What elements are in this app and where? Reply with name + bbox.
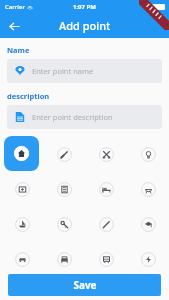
staticText: description (7, 91, 50, 101)
staticText: Enter point name (32, 66, 94, 76)
button[interactable]: bulb (133, 139, 163, 169)
staticText: 1:07 PM (73, 3, 96, 11)
button[interactable]: knife (49, 139, 79, 169)
button[interactable]: boat (7, 209, 37, 239)
button[interactable]: sofa (49, 244, 79, 274)
button[interactable]: hat (133, 209, 163, 239)
button[interactable]: bolt (133, 244, 163, 274)
button[interactable]: car (7, 244, 37, 274)
button[interactable]: bbq (133, 174, 163, 204)
button[interactable]: building (49, 174, 79, 204)
button[interactable]: bus (91, 244, 121, 274)
button[interactable]: Home icon, selected (4, 136, 39, 171)
button[interactable]: key (49, 209, 79, 239)
button[interactable]: bed (91, 174, 121, 204)
button[interactable]: scissors (91, 139, 121, 169)
button[interactable]: Save (8, 274, 161, 296)
button[interactable]: Enter point name (7, 59, 162, 83)
button[interactable]: pen (91, 209, 121, 239)
button[interactable]: Back (4, 16, 24, 36)
staticText: Save (73, 278, 97, 292)
button[interactable]: firstaid (7, 174, 37, 204)
button[interactable]: Enter point description (7, 105, 162, 129)
staticText: Enter point description (32, 112, 113, 122)
staticText: Carrier (5, 3, 25, 11)
staticText: Add point (59, 18, 111, 33)
staticText: Name (7, 45, 30, 55)
